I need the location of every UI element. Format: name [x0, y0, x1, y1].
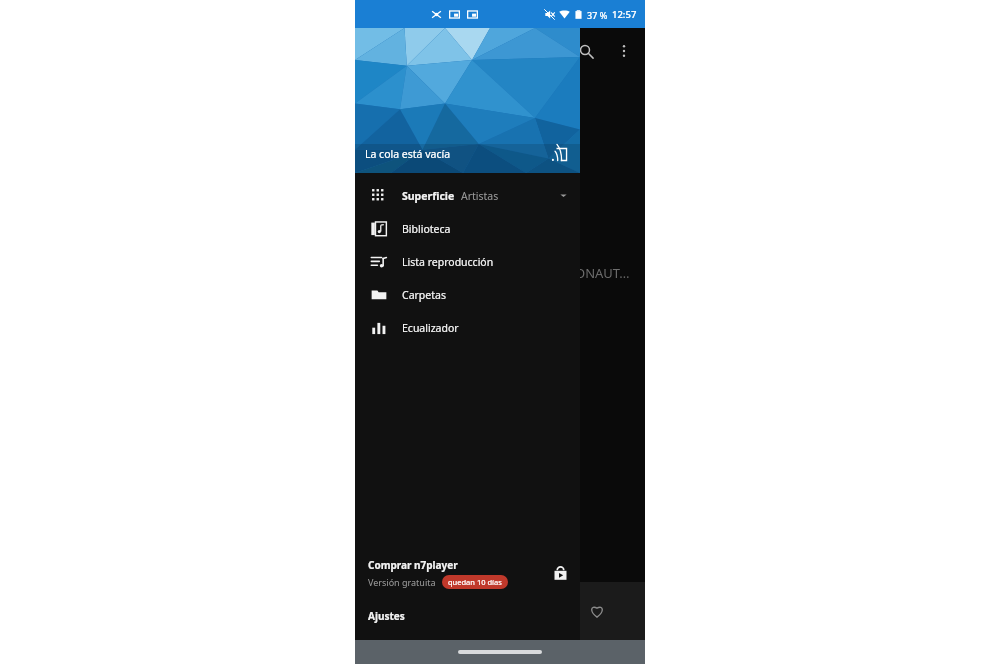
staticText: Ajustes	[368, 609, 405, 623]
staticText: Lista reproducción	[402, 255, 494, 269]
staticText: 12:57	[612, 8, 637, 21]
staticText: Superficie	[402, 189, 455, 203]
staticText: Versión gratuita	[368, 576, 436, 588]
staticText: Artistas	[461, 189, 499, 203]
button[interactable]: Favorite	[580, 594, 614, 628]
button[interactable]: Superficie	[355, 179, 580, 212]
staticText: La cola está vacía	[365, 147, 451, 161]
button[interactable]: More options	[613, 40, 635, 62]
button[interactable]: Comprar n7player	[355, 550, 580, 596]
button[interactable]: Lista reproducción	[355, 245, 580, 278]
button[interactable]: Search	[573, 38, 599, 64]
button[interactable]: Ajustes	[355, 596, 580, 636]
button[interactable]: Ecualizador	[355, 311, 580, 344]
staticText: Ecualizador	[402, 321, 459, 335]
staticText: ONAUT…	[575, 264, 630, 282]
button[interactable]: Biblioteca	[355, 212, 580, 245]
button[interactable]: Carpetas	[355, 278, 580, 311]
staticText: Carpetas	[402, 288, 446, 302]
staticText: Comprar n7player	[368, 558, 458, 572]
button[interactable]: Cast	[546, 141, 572, 167]
staticText: quedan 10 días	[448, 577, 502, 587]
staticText: 37 %	[587, 9, 608, 21]
staticText: Biblioteca	[402, 222, 451, 236]
